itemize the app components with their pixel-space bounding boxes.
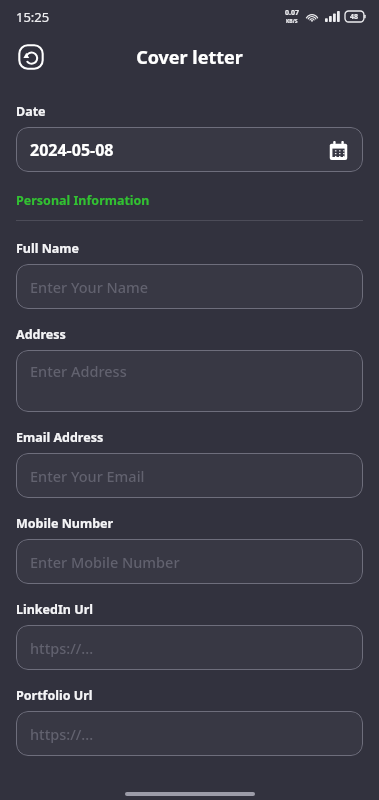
button[interactable]: Back — [15, 41, 47, 73]
button[interactable]: Enter Address — [16, 350, 363, 412]
staticText: Mobile Number — [16, 515, 114, 532]
staticText: Portfolio Url — [16, 687, 93, 704]
staticText: LinkedIn Url — [16, 601, 93, 618]
staticText: Enter Address — [30, 361, 127, 381]
button[interactable]: Enter Your Name — [16, 264, 363, 309]
button[interactable]: 2024-05-08 — [16, 127, 363, 172]
staticText: Enter Your Email — [30, 466, 145, 486]
staticText: Full Name — [16, 240, 79, 257]
staticText: https://... — [30, 638, 94, 658]
staticText: Email Address — [16, 429, 104, 446]
staticText: Enter Your Name — [30, 277, 149, 297]
button[interactable]: https://... — [16, 711, 363, 756]
staticText: https://... — [30, 724, 94, 744]
staticText: 48 — [350, 12, 359, 22]
staticText: Personal Information — [16, 192, 150, 209]
staticText: 15:25 — [16, 8, 50, 26]
staticText: Address — [16, 326, 66, 343]
staticText: KB/S — [286, 18, 298, 25]
staticText: Cover letter — [0, 45, 379, 70]
button[interactable]: Pick date — [327, 139, 349, 161]
staticText: 0.07 — [285, 8, 299, 18]
button[interactable]: Enter Your Email — [16, 453, 363, 498]
staticText: Enter Mobile Number — [30, 552, 180, 572]
button[interactable]: https://... — [16, 625, 363, 670]
staticText: 2024-05-08 — [30, 139, 114, 161]
staticText: Date — [16, 103, 46, 120]
button[interactable]: Enter Mobile Number — [16, 539, 363, 584]
